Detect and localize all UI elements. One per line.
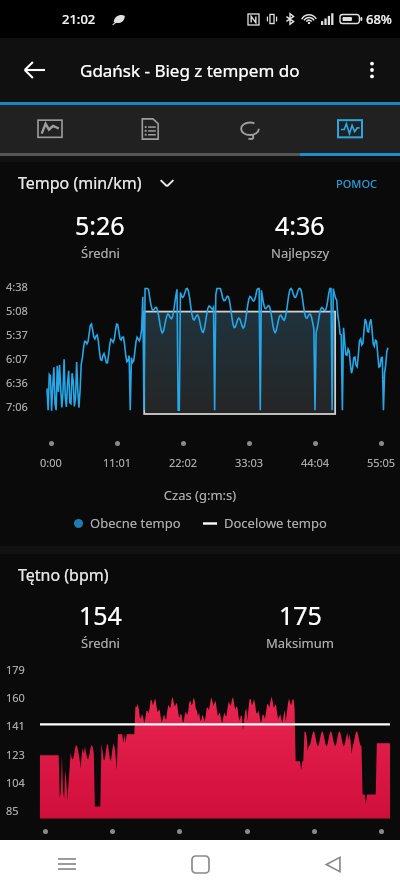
staticText: Średni [81,634,120,652]
staticText: 141 [6,718,25,733]
staticText: 5:37 [6,327,28,342]
staticText: 123 [6,747,25,762]
staticText: 4:38 [6,279,28,294]
staticText: 0:00 [40,455,62,470]
button[interactable]: Details [100,105,200,153]
staticText: 33:03 [235,455,264,470]
staticText: Maksimum [266,634,334,652]
staticText: Obecne tempo [90,514,181,532]
button[interactable]: Change metric [154,170,180,196]
button[interactable]: Map [0,105,100,153]
staticText: Średni [81,244,120,262]
button[interactable]: POMOC [332,172,382,195]
staticText: 7:06 [6,399,28,414]
staticText: 6:07 [6,351,28,366]
staticText: 21:02 [62,10,96,28]
staticText: Docelowe tempo [224,514,327,532]
staticText: Tempo (min/km) [18,172,142,194]
staticText: 4:36 [275,208,325,242]
staticText: 154 [79,598,122,632]
staticText: Gdańsk - Bieg z tempem do [80,59,300,82]
staticText: 5:08 [6,303,28,318]
staticText: POMOC [336,176,378,191]
staticText: 44:04 [301,455,330,470]
staticText: 179 [6,662,25,677]
button[interactable]: Recents [0,840,134,888]
staticText: 6:36 [6,375,28,390]
staticText: 85 [6,803,19,818]
button[interactable]: More options [350,48,394,92]
staticText: 68% [366,10,392,28]
staticText: Tętno (bpm) [18,564,109,586]
staticText: 11:01 [103,455,132,470]
button[interactable]: Home [134,840,267,888]
staticText: 55:05 [367,455,396,470]
staticText: 175 [279,598,322,632]
button[interactable]: Back [267,840,400,888]
staticText: 160 [6,690,25,705]
staticText: 104 [6,775,25,790]
button[interactable]: Charts [300,105,400,153]
staticText: Najlepszy [271,244,330,262]
button[interactable]: Back [12,48,56,92]
staticText: Czas (g:m:s) [0,486,400,504]
button[interactable]: Laps [200,105,300,153]
staticText: 5:26 [75,208,125,242]
staticText: 22:02 [169,455,198,470]
